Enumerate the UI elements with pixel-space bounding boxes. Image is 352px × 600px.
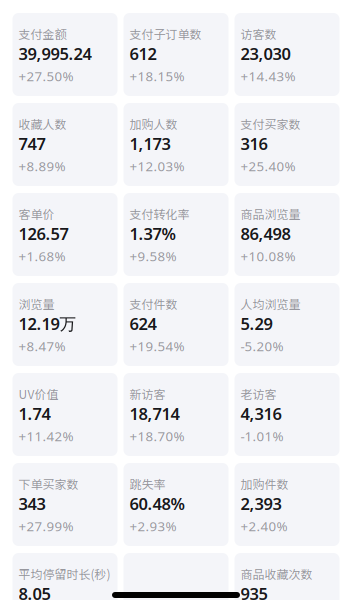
button[interactable]: 加购人数 1,173 +12.03%: [123, 103, 228, 186]
staticText: +2.40%: [240, 517, 287, 535]
button[interactable]: 支付子订单数 612 +18.15%: [123, 13, 228, 96]
staticText: 1.74: [18, 402, 50, 425]
button[interactable]: 支付买家数 316 +25.40%: [234, 103, 339, 186]
button[interactable]: 收藏人数 747 +8.89%: [12, 103, 117, 186]
staticText: 343: [18, 492, 45, 515]
button[interactable]: 商品浏览量 86,498 +10.08%: [234, 193, 339, 276]
staticText: +1.68%: [18, 247, 65, 265]
staticText: 612: [129, 42, 156, 65]
staticText: 老访客: [240, 385, 276, 402]
staticText: +19.54%: [129, 337, 184, 355]
staticText: 平均停留时长(秒): [18, 565, 110, 582]
staticText: +27.50%: [18, 67, 73, 85]
staticText: 316: [240, 132, 267, 155]
button[interactable]: 支付件数 624 +19.54%: [123, 283, 228, 366]
button[interactable]: 平均停留时长(秒) 8.05: [12, 553, 117, 600]
staticText: +11.42%: [18, 427, 73, 445]
staticText: -1.01%: [240, 427, 283, 445]
staticText: +18.70%: [129, 427, 184, 445]
button[interactable]: 浏览量 12.19万 +8.47%: [12, 283, 117, 366]
staticText: 加购件数: [240, 475, 288, 492]
staticText: 8.05: [18, 582, 50, 600]
staticText: 支付买家数: [240, 115, 300, 132]
button[interactable]: 访客数 23,030 +14.43%: [234, 13, 339, 96]
staticText: 18,714: [129, 402, 179, 425]
staticText: +14.43%: [240, 67, 295, 85]
staticText: 86,498: [240, 222, 290, 245]
staticText: 支付转化率: [129, 205, 189, 222]
button[interactable]: 老访客 4,316 -1.01%: [234, 373, 339, 456]
staticText: 商品收藏次数: [240, 565, 312, 582]
staticText: 39,995.24: [18, 42, 91, 65]
staticText: 1,173: [129, 132, 170, 155]
staticText: 126.57: [18, 222, 68, 245]
staticText: UV价值: [18, 385, 58, 402]
staticText: 4,316: [240, 402, 281, 425]
staticText: 支付金额: [18, 25, 66, 42]
staticText: 12.19万: [18, 312, 76, 335]
staticText: 客单价: [18, 205, 54, 222]
staticText: 2,393: [240, 492, 281, 515]
staticText: 支付子订单数: [129, 25, 201, 42]
staticText: +18.15%: [129, 67, 184, 85]
staticText: 跳失率: [129, 475, 165, 492]
staticText: 访客数: [240, 25, 276, 42]
button[interactable]: 支付转化率 1.37% +9.58%: [123, 193, 228, 276]
staticText: 747: [18, 132, 45, 155]
staticText: +9.58%: [129, 247, 176, 265]
staticText: 5.29: [240, 312, 272, 335]
staticText: 下单买家数: [18, 475, 78, 492]
staticText: 624: [129, 312, 156, 335]
staticText: 浏览量: [18, 295, 54, 312]
button[interactable]: UV价值 1.74 +11.42%: [12, 373, 117, 456]
staticText: 1.37%: [129, 222, 175, 245]
staticText: -5.20%: [240, 337, 283, 355]
staticText: 23,030: [240, 42, 290, 65]
staticText: 935: [240, 582, 267, 600]
button[interactable]: 客单价 126.57 +1.68%: [12, 193, 117, 276]
staticText: +8.89%: [18, 157, 65, 175]
button[interactable]: 人均浏览量 5.29 -5.20%: [234, 283, 339, 366]
staticText: +25.40%: [240, 157, 295, 175]
button[interactable]: 支付金额 39,995.24 +27.50%: [12, 13, 117, 96]
staticText: 收藏人数: [18, 115, 66, 132]
button[interactable]: 跳失率 60.48% +2.93%: [123, 463, 228, 546]
button[interactable]: 商品收藏次数 935: [234, 553, 339, 600]
staticText: 商品浏览量: [240, 205, 300, 222]
staticText: 60.48%: [129, 492, 184, 515]
staticText: 人均浏览量: [240, 295, 300, 312]
staticText: +2.93%: [129, 517, 176, 535]
staticText: 新访客: [129, 385, 165, 402]
staticText: +8.47%: [18, 337, 65, 355]
staticText: 加购人数: [129, 115, 177, 132]
button[interactable]: 加购件数 2,393 +2.40%: [234, 463, 339, 546]
staticText: +12.03%: [129, 157, 184, 175]
button[interactable]: 下单买家数 343 +27.99%: [12, 463, 117, 546]
staticText: 支付件数: [129, 295, 177, 312]
staticText: +10.08%: [240, 247, 295, 265]
staticText: +27.99%: [18, 517, 73, 535]
button[interactable]: 指标: [123, 553, 228, 600]
button[interactable]: 新访客 18,714 +18.70%: [123, 373, 228, 456]
